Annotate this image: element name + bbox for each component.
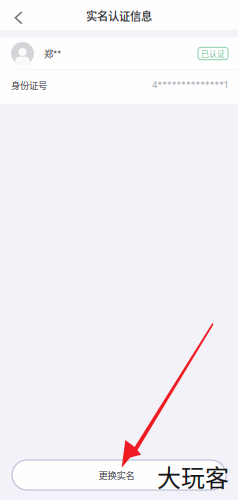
staticText: 已认证 xyxy=(201,48,225,59)
staticText: 4**************1 xyxy=(152,79,228,91)
staticText: 大玩客 xyxy=(157,459,229,494)
staticText: 实名认证信息 xyxy=(86,7,152,24)
staticText: 郑** xyxy=(44,47,61,60)
button[interactable]: 更换实名 xyxy=(12,460,226,490)
staticText: 身份证号 xyxy=(11,78,47,92)
button[interactable]: 返回 xyxy=(0,0,32,30)
staticText: 更换实名 xyxy=(98,468,134,482)
